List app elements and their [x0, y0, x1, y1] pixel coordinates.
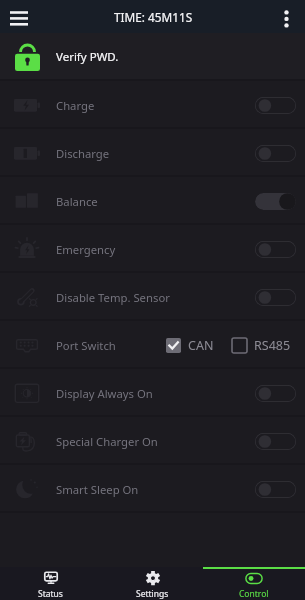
- staticText: TIME: 45M11S: [114, 9, 193, 25]
- staticText: Emergency: [56, 242, 116, 257]
- staticText: Discharge: [56, 146, 110, 161]
- button[interactable]: Emergency: [0, 225, 305, 273]
- button[interactable]: Smart Sleep On: [0, 465, 305, 513]
- button[interactable]: RS485: [232, 337, 291, 354]
- button[interactable]: Balance: [0, 177, 305, 225]
- button[interactable]: Port Switch: [0, 321, 305, 369]
- button[interactable]: Charge: [0, 81, 305, 129]
- staticText: Verify PWD.: [56, 49, 119, 65]
- staticText: Special Charger On: [56, 434, 158, 449]
- button[interactable]: Discharge: [0, 129, 305, 177]
- button[interactable]: Settings: [101, 567, 203, 600]
- button[interactable]: Verify PWD.: [0, 33, 305, 81]
- staticText: Balance: [56, 194, 98, 209]
- button[interactable]: More options: [268, 0, 305, 33]
- button[interactable]: CAN: [166, 337, 214, 354]
- staticText: Charge: [56, 98, 95, 113]
- button[interactable]: Turn on: [255, 97, 296, 114]
- button[interactable]: Turn on: [255, 289, 296, 306]
- staticText: Smart Sleep On: [56, 482, 139, 497]
- button[interactable]: Control: [203, 567, 305, 600]
- staticText: Settings: [136, 588, 169, 600]
- staticText: RS485: [254, 337, 291, 354]
- staticText: Disable Temp. Sensor: [56, 290, 170, 305]
- staticText: CAN: [188, 337, 214, 354]
- button[interactable]: Turn on: [255, 145, 296, 162]
- button[interactable]: Special Charger On: [0, 417, 305, 465]
- staticText: Port Switch: [56, 338, 116, 353]
- button[interactable]: Turn on: [255, 433, 296, 450]
- button[interactable]: Disable Temp. Sensor: [0, 273, 305, 321]
- staticText: Display Always On: [56, 386, 153, 401]
- staticText: Status: [38, 588, 63, 600]
- button[interactable]: Status: [0, 567, 101, 600]
- button[interactable]: Turn off: [255, 193, 296, 210]
- button[interactable]: Turn on: [255, 385, 296, 402]
- button[interactable]: Turn on: [255, 481, 296, 498]
- button[interactable]: Menu: [0, 0, 38, 33]
- button[interactable]: Turn on: [255, 241, 296, 258]
- button[interactable]: Display Always On: [0, 369, 305, 417]
- staticText: Control: [239, 588, 269, 600]
